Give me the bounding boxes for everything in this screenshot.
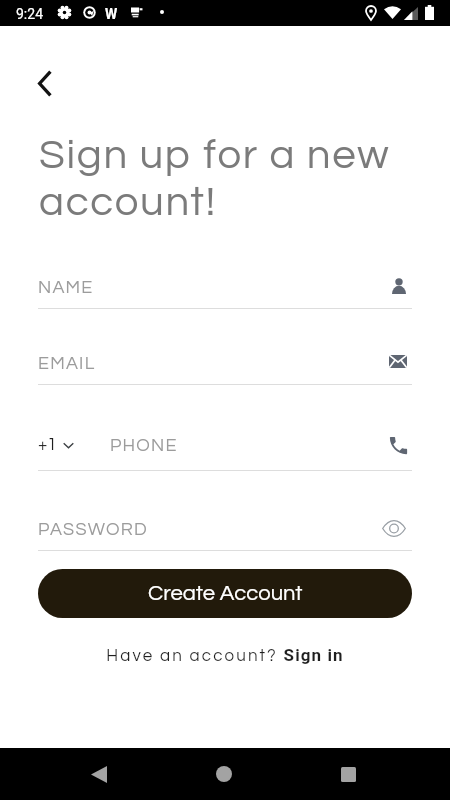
button[interactable]: Back [24,62,66,104]
button[interactable]: Name [386,273,412,299]
button[interactable]: EMAIL [38,350,412,376]
button[interactable]: Email [385,348,411,374]
button[interactable]: PASSWORD [38,516,412,542]
staticText: +1 [38,436,57,454]
staticText: NAME [38,278,94,297]
button[interactable]: Recent apps [324,750,372,798]
staticText: EMAIL [38,354,96,373]
button[interactable]: Phone [385,432,411,458]
staticText: W [105,6,118,22]
button[interactable]: +1 [38,436,74,454]
button[interactable]: Back [75,750,123,798]
staticText: 9:24 [16,6,43,22]
button[interactable]: Home [200,750,248,798]
staticText: PASSWORD [38,520,148,539]
staticText: Sign up for a new account! [39,134,411,224]
button[interactable]: Show password [381,515,407,541]
button[interactable]: Have an account? Sign in [106,645,344,665]
button[interactable]: Create Account [38,569,412,618]
staticText: PHONE [110,436,178,455]
button[interactable]: NAME [38,274,412,300]
staticText: Create Account [148,582,303,605]
